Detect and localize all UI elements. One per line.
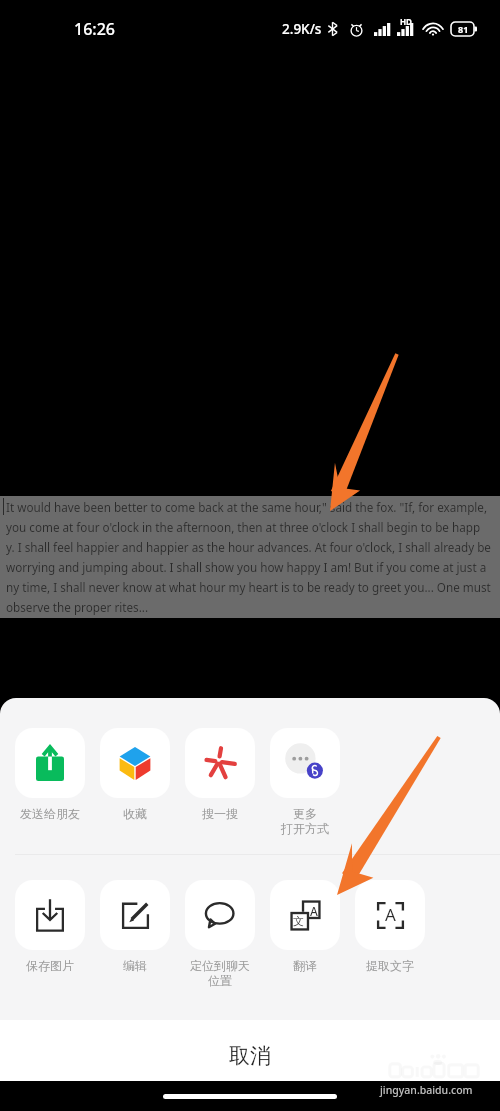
staticText: 取消 (229, 1043, 271, 1069)
staticText: worrying and jumping about. I shall show… (6, 559, 487, 575)
staticText: 打开方式 (281, 821, 329, 836)
button[interactable]: A (347, 880, 432, 973)
staticText: A (385, 903, 396, 926)
staticText: HD (400, 16, 412, 27)
staticText: 更多 (293, 806, 317, 821)
button[interactable]: 更多 (262, 728, 347, 836)
staticText: 收藏 (123, 806, 147, 821)
staticText: 保存图片 (26, 958, 74, 973)
staticText: y. I shall feel happier and happier as t… (6, 539, 491, 555)
staticText: A (310, 903, 318, 919)
staticText: 提取文字 (366, 958, 414, 973)
staticText: 2.9K/s (282, 20, 322, 38)
button[interactable]: 发送给朋友 (7, 728, 92, 821)
button[interactable]: 搜一搜 (177, 728, 262, 821)
staticText: observe the proper rites... (6, 599, 149, 615)
staticText: 编辑 (123, 958, 147, 973)
button[interactable]: 编辑 (92, 880, 177, 973)
staticText: 发送给朋友 (20, 806, 80, 821)
staticText: 16:26 (74, 18, 115, 40)
staticText: 位置 (208, 973, 232, 988)
button[interactable]: A (262, 880, 347, 973)
staticText: ny time, I shall never know at what hour… (6, 579, 491, 595)
staticText: 翻译 (293, 958, 317, 973)
staticText: 定位到聊天 (190, 958, 250, 973)
staticText: you come at four o'clock in the afternoo… (6, 519, 481, 535)
button[interactable]: 保存图片 (7, 880, 92, 973)
button[interactable]: 取消 (0, 1020, 500, 1081)
staticText: 搜一搜 (202, 806, 238, 821)
staticText: It would have been better to come back a… (6, 499, 488, 515)
staticText: 文 (293, 914, 304, 928)
staticText: jingyan.baidu.com (380, 1083, 473, 1097)
button[interactable]: 收藏 (92, 728, 177, 821)
button[interactable]: 定位到聊天 (177, 880, 262, 988)
staticText: 81 (458, 23, 469, 35)
